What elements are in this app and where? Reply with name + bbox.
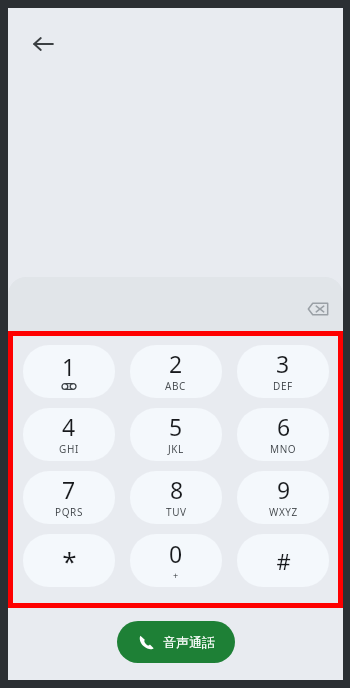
button[interactable]: * (23, 534, 115, 587)
staticText: 5 (169, 411, 183, 442)
button[interactable]: 7 (23, 471, 115, 524)
staticText: 3 (276, 348, 290, 379)
staticText: + (173, 569, 179, 581)
button[interactable]: 音声通話 (117, 621, 235, 663)
staticText: ABC (165, 379, 187, 393)
staticText: 7 (62, 474, 76, 505)
staticText: PQRS (55, 505, 83, 519)
staticText: 9 (277, 474, 291, 505)
button[interactable]: 5 (130, 408, 222, 461)
staticText: * (62, 543, 77, 578)
button[interactable]: Backspace (297, 288, 339, 330)
staticText: TUV (166, 505, 187, 519)
staticText: MNO (270, 442, 297, 456)
button[interactable]: # (237, 534, 329, 587)
staticText: DEF (273, 379, 293, 393)
button[interactable]: 0 (130, 534, 222, 587)
staticText: 4 (62, 411, 76, 442)
button[interactable]: 9 (237, 471, 329, 524)
button[interactable]: 8 (130, 471, 222, 524)
staticText: 2 (169, 348, 183, 379)
staticText: 1 (62, 351, 76, 382)
staticText: JKL (168, 442, 184, 456)
button[interactable]: 1 (23, 345, 115, 398)
staticText: 0 (169, 538, 183, 569)
staticText: 8 (170, 474, 184, 505)
button[interactable]: 6 (237, 408, 329, 461)
staticText: 音声通話 (163, 634, 215, 650)
staticText: GHI (59, 442, 79, 456)
staticText: 6 (277, 411, 291, 442)
staticText: # (276, 546, 291, 576)
button[interactable]: Back (20, 21, 66, 67)
button[interactable]: 4 (23, 408, 115, 461)
button[interactable]: 2 (130, 345, 222, 398)
staticText: WXYZ (269, 505, 298, 519)
button[interactable]: 3 (237, 345, 329, 398)
